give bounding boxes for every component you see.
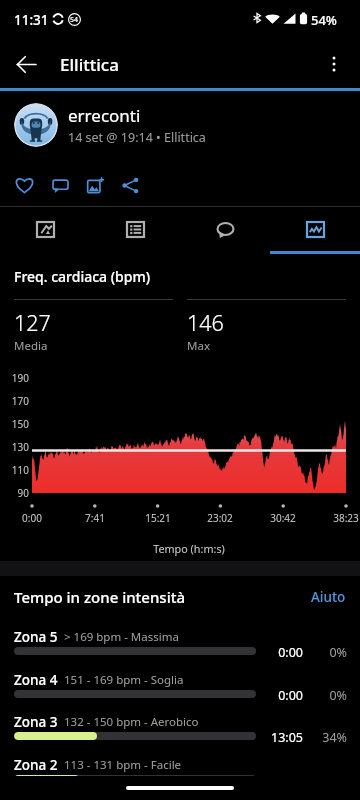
staticText: 170 <box>4 394 29 408</box>
staticText: 15:21 <box>140 511 176 525</box>
staticText: 90 <box>4 486 29 500</box>
button[interactable]: Zona 5 <box>0 623 360 665</box>
button[interactable]: Mappa <box>0 207 90 254</box>
staticText: 151 - 169 bpm - Soglia <box>64 672 184 688</box>
button[interactable]: erreconti <box>0 99 360 151</box>
staticText: 54% <box>311 11 337 29</box>
button[interactable]: Parziali <box>90 207 180 254</box>
staticText: Zona 2 <box>14 756 58 774</box>
staticText: 127 <box>14 308 51 337</box>
staticText: 0:00 <box>14 511 50 525</box>
staticText: Tempo (h:m:s) <box>129 541 249 556</box>
staticText: Media <box>14 338 48 354</box>
staticText: 34% <box>313 729 347 746</box>
button[interactable]: Aiuto <box>307 585 350 609</box>
staticText: 132 - 150 bpm - Aerobico <box>64 714 199 730</box>
staticText: Max <box>187 338 210 354</box>
staticText: 113 - 131 bpm - Facile <box>64 757 182 773</box>
staticText: Ellittica <box>60 53 119 76</box>
staticText: 110 <box>4 463 29 477</box>
staticText: 13:05 <box>259 729 303 746</box>
button[interactable]: Zona 4 <box>0 666 360 708</box>
staticText: 30:42 <box>265 511 301 525</box>
staticText: Zona 4 <box>14 671 58 689</box>
staticText: 146 <box>187 308 224 337</box>
staticText: Zona 3 <box>14 713 58 731</box>
staticText: 7:41 <box>77 511 113 525</box>
staticText: 0% <box>313 687 347 704</box>
staticText: 0% <box>313 644 347 661</box>
button[interactable]: More options <box>314 44 354 84</box>
staticText: erreconti <box>68 104 141 127</box>
button[interactable]: Giri <box>180 207 270 254</box>
staticText: 190 <box>4 371 29 385</box>
staticText: 130 <box>4 440 29 454</box>
button[interactable]: Back <box>6 44 46 84</box>
staticText: Tempo in zone intensità <box>14 587 186 607</box>
button[interactable]: Aggiungi foto <box>78 168 112 202</box>
button[interactable]: Mi piace <box>7 168 41 202</box>
staticText: 0:00 <box>259 687 303 704</box>
button[interactable]: Zona 2 <box>0 751 360 793</box>
staticText: 23:02 <box>202 511 238 525</box>
button[interactable]: Grafici <box>270 207 360 254</box>
staticText: > 169 bpm - Massima <box>64 629 179 645</box>
staticText: 38:23 <box>328 511 360 525</box>
staticText: Freq. cardiaca (bpm) <box>14 267 151 286</box>
staticText: 150 <box>4 417 29 431</box>
button[interactable]: Zona 3 <box>0 708 360 750</box>
button[interactable]: Commenta <box>43 168 77 202</box>
staticText: 54 <box>70 15 79 25</box>
staticText: 14 set @ 19:14 • Ellittica <box>68 129 206 146</box>
staticText: 11:31 <box>14 11 49 29</box>
staticText: Zona 5 <box>14 628 58 646</box>
staticText: Aiuto <box>311 588 346 606</box>
staticText: 0:00 <box>259 644 303 661</box>
button[interactable]: Condividi <box>113 168 147 202</box>
